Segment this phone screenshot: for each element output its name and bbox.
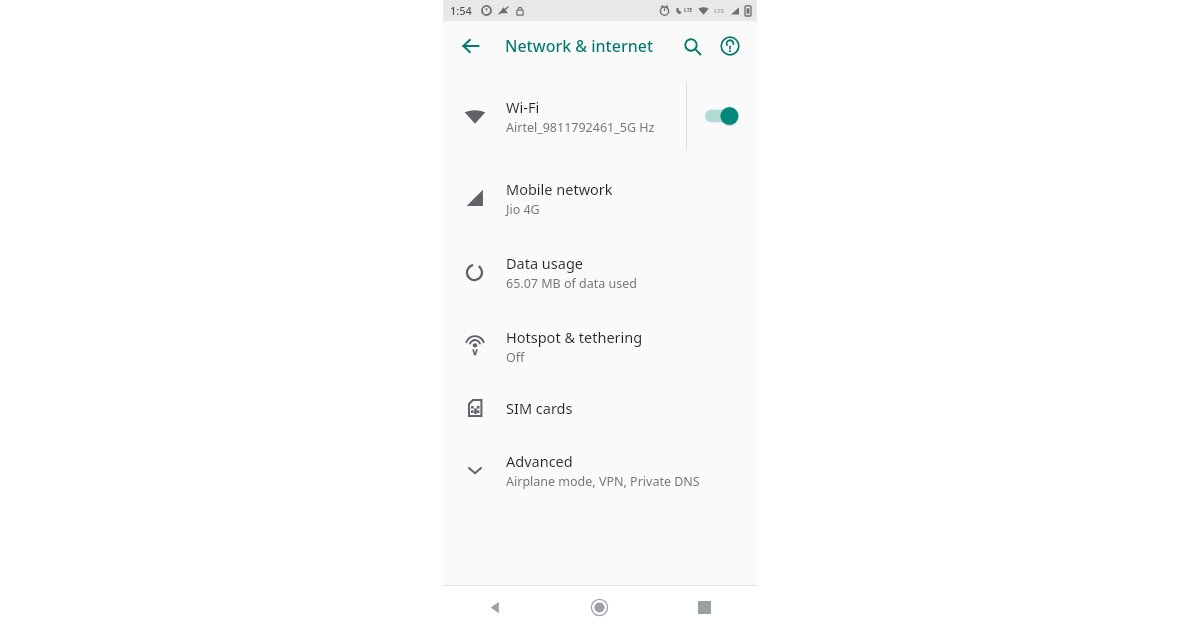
button[interactable]: Data usage <box>443 235 757 309</box>
button[interactable]: Wi-Fi toggle <box>687 71 757 161</box>
staticText: Data usage <box>506 253 583 273</box>
button[interactable]: Wi-Fi <box>443 71 757 161</box>
button[interactable]: Back <box>443 586 547 628</box>
staticText: Network & internet <box>505 35 654 57</box>
button[interactable]: Mobile network <box>443 161 757 235</box>
staticText: Airplane mode, VPN, Private DNS <box>506 473 700 490</box>
button[interactable]: Home <box>547 586 652 628</box>
staticText: Wi-Fi <box>506 97 540 117</box>
button[interactable]: Advanced <box>443 433 757 507</box>
staticText: Off <box>506 349 525 366</box>
button[interactable]: Help <box>711 27 749 65</box>
staticText: Mobile network <box>506 179 613 199</box>
button[interactable]: SIM cards <box>443 383 757 433</box>
staticText: LTE <box>684 7 693 14</box>
staticText: 65.07 MB of data used <box>506 275 637 292</box>
button[interactable]: Hotspot & tethering <box>443 309 757 383</box>
staticText: Advanced <box>506 451 573 471</box>
button[interactable]: Search <box>673 27 711 65</box>
staticText: Jio 4G <box>506 201 540 218</box>
button[interactable]: Recent apps <box>652 586 757 628</box>
staticText: Hotspot & tethering <box>506 327 643 347</box>
staticText: Airtel_9811792461_5G Hz <box>506 119 655 136</box>
staticText: LTE <box>714 7 725 15</box>
button[interactable]: Back <box>453 28 489 64</box>
staticText: 1:54 <box>450 3 472 18</box>
staticText: SIM cards <box>506 398 573 418</box>
